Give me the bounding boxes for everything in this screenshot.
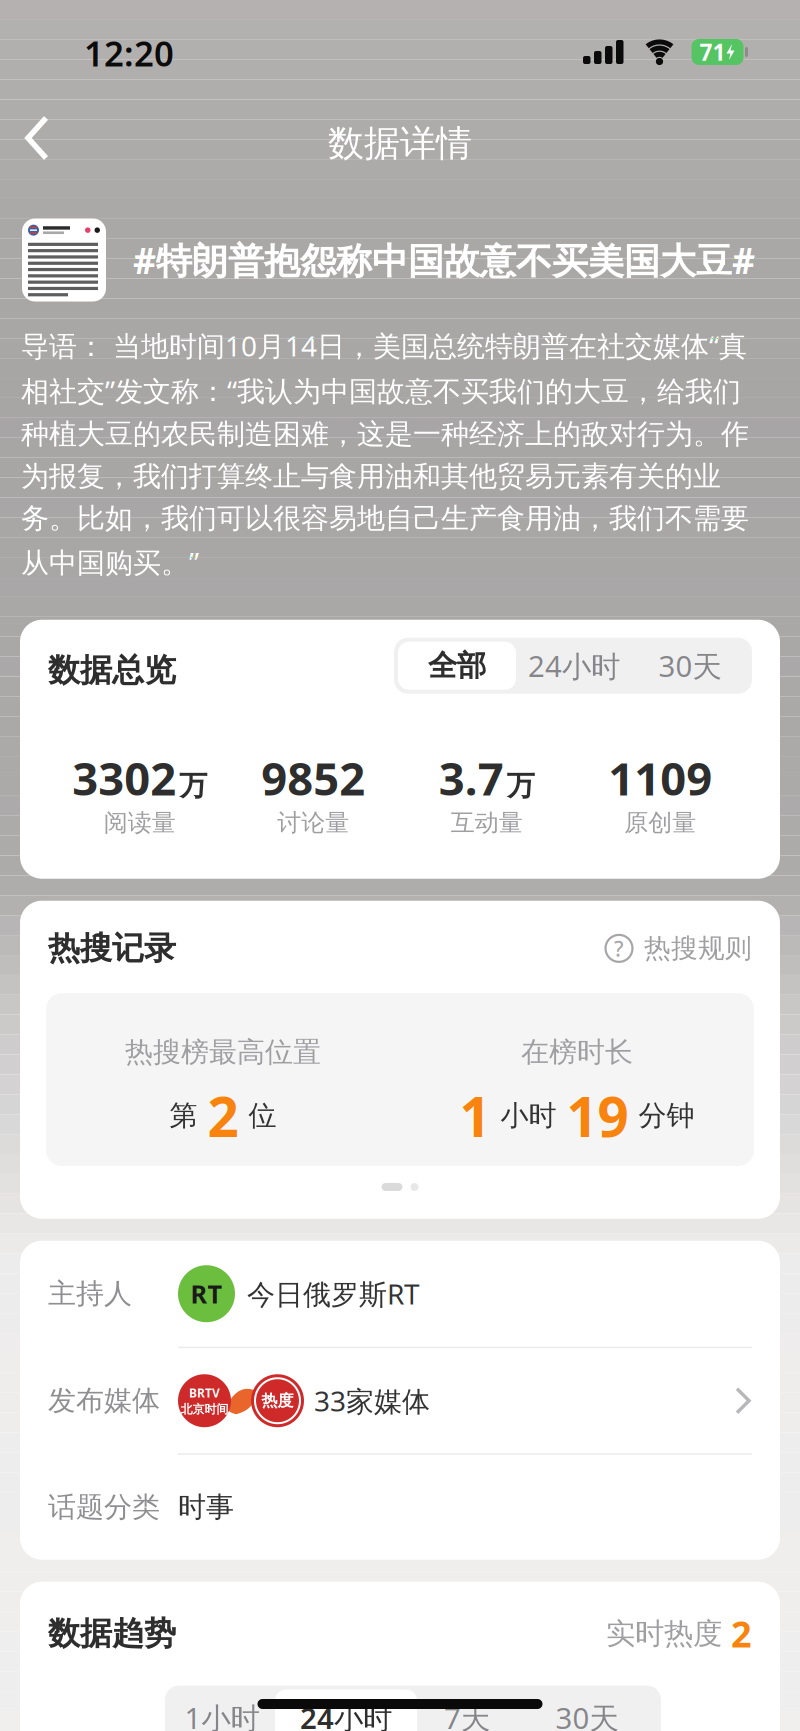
- staticText: 24小时: [300, 1698, 392, 1731]
- staticText: 主持人: [48, 1276, 132, 1311]
- button[interactable]: 30天: [632, 642, 748, 690]
- staticText: 热搜榜最高位置: [125, 1035, 321, 1069]
- button[interactable]: Back: [0, 90, 64, 186]
- button[interactable]: ?: [605, 932, 752, 965]
- staticText: 热搜记录: [48, 929, 176, 968]
- staticText: 万: [179, 768, 207, 803]
- staticText: 7天: [444, 1698, 490, 1731]
- staticText: 讨论量: [277, 808, 349, 837]
- staticText: ?: [614, 934, 624, 962]
- staticText: 导语： 当地时间10月14日，美国总统特朗普在社交媒体“真 相社交”发文称：“我…: [21, 327, 749, 581]
- staticText: 原创量: [624, 808, 696, 837]
- staticText: BRTV: [189, 1385, 220, 1401]
- staticText: 万: [507, 768, 535, 803]
- staticText: 3.7: [439, 748, 504, 808]
- staticText: 第: [169, 1098, 197, 1133]
- staticText: 数据趋势: [48, 1614, 176, 1653]
- staticText: 数据详情: [328, 121, 472, 166]
- staticText: 19: [566, 1079, 628, 1152]
- staticText: 3302: [72, 748, 176, 808]
- staticText: 30天: [555, 1698, 618, 1731]
- staticText: 话题分类: [48, 1490, 160, 1524]
- staticText: 1: [459, 1079, 490, 1152]
- staticText: 实时热度: [606, 1616, 722, 1652]
- staticText: 热搜规则: [644, 932, 752, 965]
- staticText: 小时: [500, 1098, 556, 1133]
- staticText: 24小时: [528, 646, 620, 685]
- staticText: 12:20: [84, 30, 174, 76]
- staticText: 今日俄罗斯RT: [247, 1275, 420, 1312]
- staticText: 数据总览: [48, 651, 176, 690]
- staticText: 全部: [428, 648, 486, 684]
- staticText: 互动量: [451, 808, 523, 837]
- staticText: 时事: [178, 1490, 234, 1524]
- staticText: 9852: [261, 748, 365, 808]
- button[interactable]: 24小时: [516, 642, 632, 690]
- button[interactable]: 30天: [517, 1689, 657, 1731]
- staticText: 33家媒体: [314, 1382, 430, 1419]
- staticText: 北京时间: [180, 1402, 228, 1416]
- staticText: 1109: [608, 748, 712, 808]
- staticText: 阅读量: [104, 808, 176, 837]
- button[interactable]: 全部: [398, 642, 516, 690]
- staticText: 在榜时长: [521, 1035, 633, 1069]
- staticText: 位: [248, 1098, 276, 1133]
- staticText: 热度: [261, 1391, 293, 1411]
- staticText: 2: [207, 1079, 238, 1152]
- staticText: RT: [190, 1277, 222, 1310]
- staticText: 71: [699, 37, 725, 67]
- button[interactable]: 发布媒体: [20, 1348, 780, 1453]
- staticText: 分钟: [638, 1098, 694, 1133]
- staticText: #特朗普抱怨称中国故意不买美国大豆#: [133, 236, 755, 284]
- staticText: 1小时: [184, 1698, 259, 1731]
- staticText: 2: [722, 1610, 752, 1657]
- button[interactable]: 24小时: [275, 1689, 417, 1731]
- button[interactable]: 1小时: [169, 1689, 275, 1731]
- button[interactable]: 7天: [417, 1689, 517, 1731]
- staticText: 30天: [658, 646, 721, 685]
- staticText: 发布媒体: [48, 1383, 160, 1418]
